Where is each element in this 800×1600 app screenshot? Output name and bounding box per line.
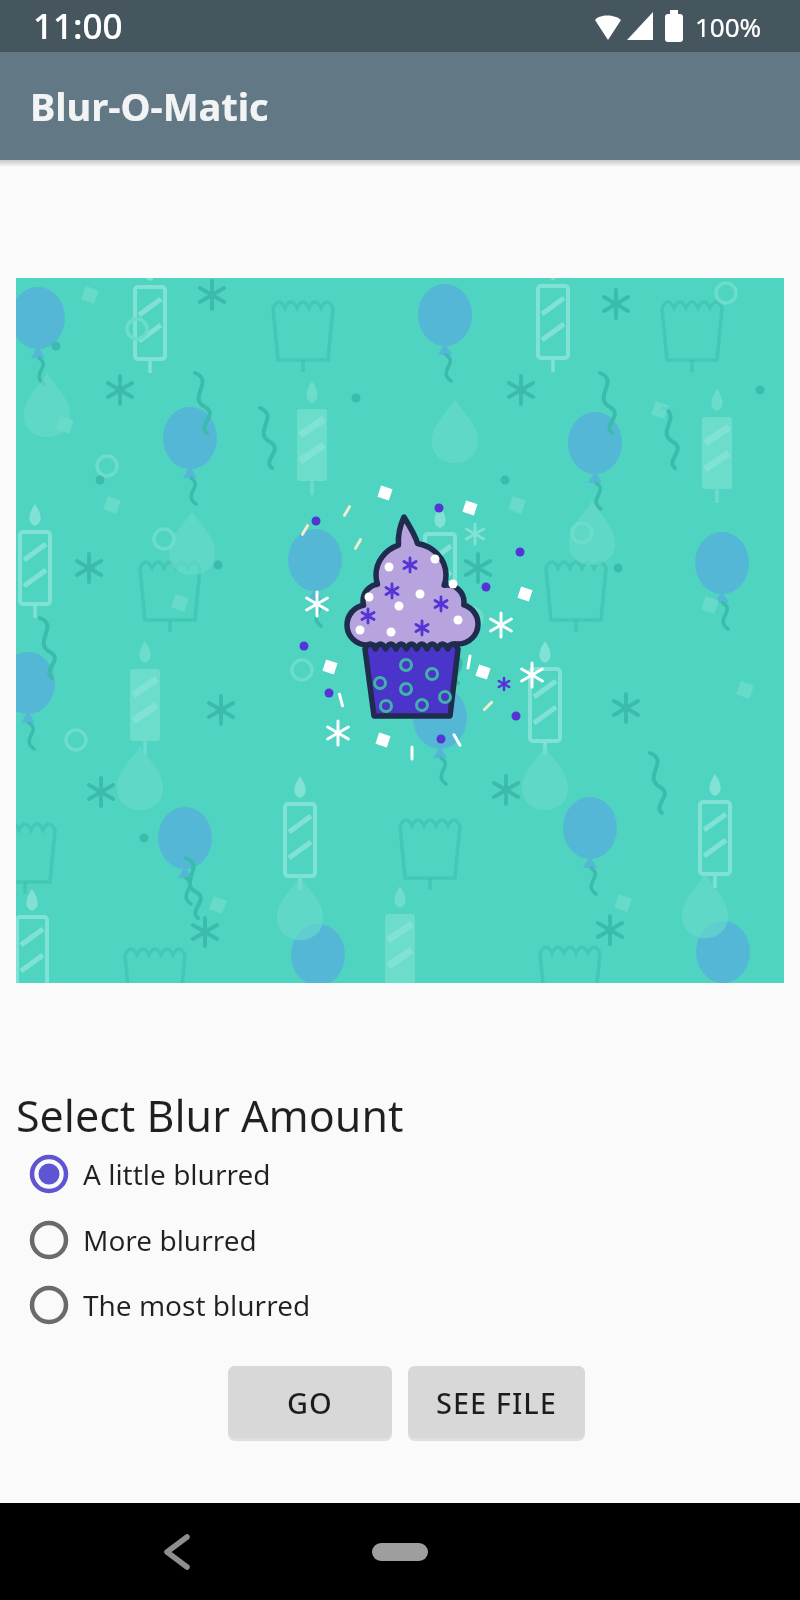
staticText: Blur-O-Matic [30, 80, 269, 132]
staticText: GO [287, 1383, 333, 1422]
staticText: 11:00 [33, 2, 123, 50]
button[interactable]: The most blurred [30, 1272, 311, 1338]
staticText: 100% [695, 9, 762, 44]
button[interactable]: A little blurred [30, 1141, 271, 1207]
button[interactable] [372, 1543, 428, 1561]
button[interactable]: SEE FILE [408, 1366, 585, 1438]
staticText: More blurred [83, 1221, 257, 1259]
staticText: SEE FILE [436, 1383, 558, 1422]
button[interactable]: GO [228, 1366, 392, 1438]
button[interactable]: More blurred [30, 1207, 257, 1273]
staticText: Select Blur Amount [16, 1086, 404, 1145]
staticText: The most blurred [83, 1286, 311, 1324]
button[interactable] [150, 1525, 204, 1579]
staticText: A little blurred [83, 1155, 271, 1193]
